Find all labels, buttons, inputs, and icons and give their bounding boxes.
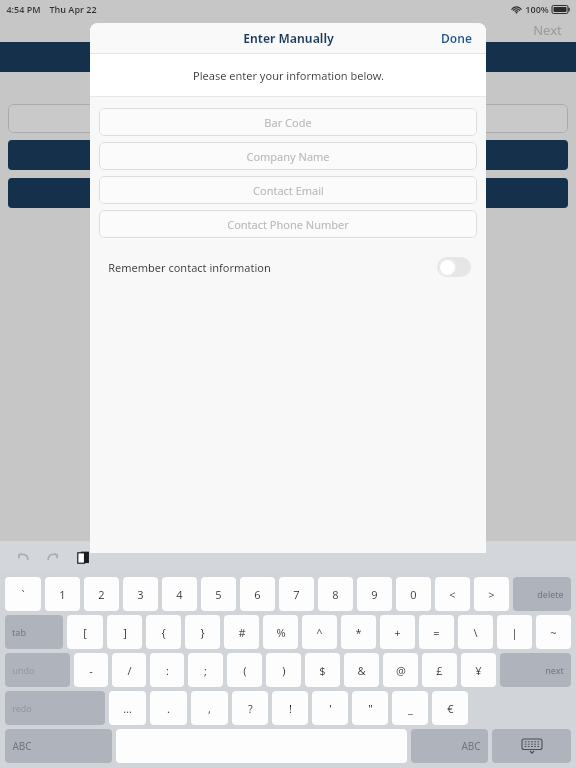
button[interactable]: ? <box>232 691 268 725</box>
staticText: 3 <box>137 587 144 602</box>
button[interactable]: ¥ <box>461 653 496 687</box>
staticText: # <box>238 625 246 640</box>
button[interactable]: Redo <box>42 546 64 568</box>
button[interactable]: + <box>380 615 415 649</box>
staticText: 4:54 PM <box>6 3 41 15</box>
button[interactable]: Next <box>533 21 562 39</box>
button[interactable]: ABC <box>5 729 112 763</box>
button[interactable]: > <box>474 577 509 611</box>
staticText: ~ <box>550 625 557 640</box>
button[interactable] <box>8 140 568 170</box>
staticText: * <box>355 625 362 640</box>
button[interactable]: . <box>150 691 187 725</box>
staticText: { <box>161 625 166 640</box>
button[interactable]: redo <box>5 691 105 725</box>
button[interactable]: { <box>146 615 181 649</box>
button[interactable]: | <box>497 615 532 649</box>
button[interactable]: 1 <box>45 577 80 611</box>
button[interactable]: @ <box>383 653 418 687</box>
button[interactable]: ; <box>188 653 223 687</box>
staticText: next <box>545 664 564 676</box>
button[interactable]: Bar Code <box>99 108 477 136</box>
staticText: + <box>394 625 401 640</box>
staticText: ¥ <box>475 663 482 678</box>
staticText: [ <box>83 625 87 640</box>
button[interactable]: Remember contact information toggle <box>437 257 471 277</box>
button[interactable]: Undo <box>12 546 34 568</box>
button[interactable] <box>8 178 568 208</box>
button[interactable]: / <box>112 653 146 687</box>
button[interactable]: 6 <box>240 577 275 611</box>
button[interactable]: 4 <box>162 577 197 611</box>
button[interactable]: = <box>419 615 454 649</box>
button[interactable]: & <box>344 653 379 687</box>
staticText: SPOTLESS <box>274 23 327 38</box>
staticText: tab <box>12 626 26 638</box>
staticText: 8 <box>332 587 339 602</box>
button[interactable]: 3 <box>123 577 158 611</box>
button[interactable]: ~ <box>536 615 571 649</box>
staticText: ) <box>282 663 286 678</box>
button[interactable]: 5 <box>201 577 236 611</box>
staticText: & <box>357 663 366 678</box>
button[interactable]: % <box>263 615 298 649</box>
button[interactable]: Paste <box>72 546 94 568</box>
staticText: / <box>127 663 132 678</box>
button[interactable]: $ <box>305 653 340 687</box>
button[interactable]: ] <box>107 615 142 649</box>
button[interactable]: 9 <box>357 577 392 611</box>
button[interactable]: ! <box>272 691 308 725</box>
button[interactable]: Hide keyboard <box>492 729 571 763</box>
button[interactable]: , <box>191 691 228 725</box>
staticText: Please enter your information below. <box>193 68 384 83</box>
button[interactable]: # <box>224 615 259 649</box>
button[interactable]: 8 <box>318 577 353 611</box>
button[interactable]: < <box>435 577 470 611</box>
button[interactable]: Contact Email <box>99 176 477 204</box>
button[interactable]: tab <box>5 615 63 649</box>
button[interactable]: _ <box>392 691 428 725</box>
button[interactable]: Done <box>441 30 472 46</box>
button[interactable]: * <box>341 615 376 649</box>
button[interactable]: 7 <box>279 577 314 611</box>
button[interactable]: Company Name <box>99 142 477 170</box>
button[interactable]: undo <box>5 653 70 687</box>
staticText: Enter Manually <box>243 30 334 46</box>
staticText: . <box>167 701 170 716</box>
staticText: Done <box>441 30 472 46</box>
button[interactable]: ( <box>227 653 262 687</box>
staticText: 4 <box>176 587 183 602</box>
button[interactable]: 2 <box>84 577 119 611</box>
staticText: $ <box>319 663 326 678</box>
button[interactable]: ^ <box>302 615 337 649</box>
button[interactable]: ' <box>312 691 348 725</box>
button[interactable]: ) <box>266 653 301 687</box>
staticText: ! <box>289 701 292 716</box>
button[interactable]: ` <box>5 577 41 611</box>
button[interactable]: ABC <box>411 729 488 763</box>
staticText: … <box>123 701 132 716</box>
button[interactable]: delete <box>513 577 571 611</box>
button[interactable]: € <box>432 691 468 725</box>
staticText: Contact Phone Number <box>227 217 349 232</box>
staticText: 0 <box>410 587 417 602</box>
button[interactable]: " <box>352 691 388 725</box>
button[interactable]: } <box>185 615 220 649</box>
button[interactable]: £ <box>422 653 457 687</box>
button[interactable]: [ <box>67 615 103 649</box>
button[interactable]: 0 <box>396 577 431 611</box>
button[interactable] <box>8 104 568 133</box>
button[interactable]: \ <box>458 615 493 649</box>
button[interactable]: - <box>74 653 108 687</box>
button[interactable]: Remember contact information <box>108 252 471 282</box>
button[interactable]: Contact Phone Number <box>99 210 477 238</box>
staticText: 6 <box>254 587 261 602</box>
button[interactable]: : <box>150 653 184 687</box>
button[interactable]: … <box>109 691 146 725</box>
staticText: ; <box>204 663 207 678</box>
button[interactable]: next <box>500 653 571 687</box>
staticText: < <box>449 587 456 602</box>
staticText: \ <box>473 625 478 640</box>
staticText: £ <box>436 663 443 678</box>
